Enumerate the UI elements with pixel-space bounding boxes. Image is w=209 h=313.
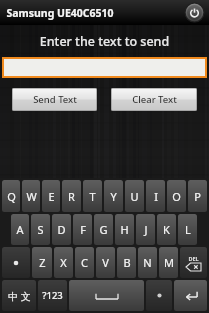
staticText: U	[130, 189, 139, 204]
staticText: Q	[7, 189, 16, 204]
button[interactable]: Y	[104, 180, 123, 212]
button[interactable]: Send Text	[12, 88, 97, 111]
staticText: J	[144, 222, 148, 237]
button[interactable]: S	[31, 214, 50, 245]
staticText: V	[102, 255, 109, 270]
staticText: Clear Text	[132, 93, 177, 106]
staticText: Z	[39, 255, 46, 270]
button[interactable]: C	[75, 247, 94, 278]
button[interactable]: M	[159, 247, 178, 278]
staticText: B	[123, 255, 131, 270]
button[interactable]: Chinese input	[2, 280, 36, 311]
button[interactable]: D	[52, 214, 71, 245]
button[interactable]: H	[115, 214, 134, 245]
button[interactable]: ?123	[38, 280, 67, 311]
staticText: N	[143, 255, 152, 270]
button[interactable]: F	[73, 214, 92, 245]
button[interactable]: N	[138, 247, 157, 278]
button[interactable]: E	[42, 180, 60, 212]
staticText: Samsung UE40C6510	[6, 6, 114, 20]
button[interactable]: X	[54, 247, 73, 278]
staticText: X	[60, 255, 67, 270]
button[interactable]: Space	[69, 280, 144, 311]
staticText: R	[68, 189, 75, 204]
button[interactable]: Z	[32, 247, 52, 278]
staticText: Y	[110, 189, 117, 204]
staticText: T	[89, 189, 96, 204]
button[interactable]: T	[83, 180, 102, 212]
staticText: DEL	[188, 255, 199, 262]
button[interactable]: Shift	[2, 247, 30, 278]
button[interactable]: P	[188, 180, 207, 212]
button[interactable]: Enter	[174, 280, 207, 311]
button[interactable]: L	[178, 214, 197, 245]
staticText: W	[26, 189, 37, 204]
staticText: K	[163, 222, 170, 237]
staticText: P	[194, 189, 201, 204]
staticText: M	[164, 255, 174, 270]
button[interactable]: O	[167, 180, 186, 212]
button[interactable]: B	[117, 247, 136, 278]
staticText: A	[16, 222, 24, 237]
button[interactable]: I	[146, 180, 165, 212]
button[interactable]: Period	[146, 280, 172, 311]
button[interactable]: Clear Text	[111, 88, 197, 111]
staticText: Enter the text to send	[0, 33, 209, 50]
button[interactable]: W	[22, 180, 40, 212]
staticText: S	[37, 222, 44, 237]
button[interactable]: Q	[2, 180, 20, 212]
button[interactable]: Power	[185, 3, 204, 22]
button[interactable]: G	[94, 214, 113, 245]
staticText: 中 文	[8, 289, 31, 303]
staticText: G	[99, 222, 108, 237]
button[interactable]: R	[62, 180, 81, 212]
button[interactable]: V	[96, 247, 115, 278]
button[interactable]: Delete	[180, 247, 207, 278]
staticText: F	[80, 222, 86, 237]
staticText: I	[154, 189, 158, 204]
button[interactable]: J	[136, 214, 155, 245]
button[interactable]: U	[125, 180, 144, 212]
staticText: L	[185, 222, 191, 237]
staticText: D	[57, 222, 66, 237]
staticText: O	[172, 189, 181, 204]
staticText: C	[81, 255, 88, 270]
button[interactable]: A	[11, 214, 29, 245]
staticText: ?123	[42, 289, 63, 302]
staticText: H	[120, 222, 129, 237]
staticText: Send Text	[33, 93, 77, 106]
staticText: E	[48, 189, 55, 204]
button[interactable]: K	[157, 214, 176, 245]
